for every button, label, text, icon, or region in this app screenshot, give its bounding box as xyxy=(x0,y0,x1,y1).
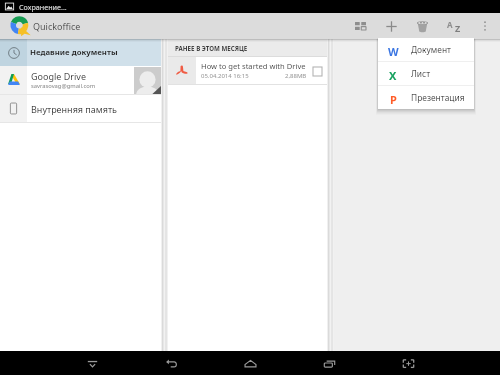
button[interactable]: W xyxy=(378,38,474,61)
staticText: 2,88MB xyxy=(285,72,307,80)
staticText: Quickoffice xyxy=(33,20,81,32)
button[interactable]: Sort xyxy=(438,13,469,39)
staticText: P xyxy=(390,92,397,104)
staticText: Лист xyxy=(411,68,431,79)
button[interactable]: P xyxy=(378,86,474,109)
button[interactable]: Hide keyboard xyxy=(53,351,132,375)
button[interactable]: More options xyxy=(469,13,500,39)
staticText: X xyxy=(389,68,397,80)
staticText: A xyxy=(447,19,453,30)
staticText: РАНЕЕ В ЭТОМ МЕСЯЦЕ xyxy=(175,44,248,52)
button[interactable]: Home xyxy=(211,351,290,375)
staticText: How to get started with Drive xyxy=(201,61,306,71)
button[interactable]: Select file xyxy=(309,63,325,79)
staticText: Недавние документы xyxy=(30,47,118,58)
staticText: Сохранение... xyxy=(19,2,67,12)
button[interactable]: Recent apps xyxy=(290,351,369,375)
staticText: savrasovag@gmail.com xyxy=(31,82,96,90)
button[interactable]: Add xyxy=(376,13,407,39)
button[interactable]: Grid view xyxy=(345,13,376,39)
staticText: Google Drive xyxy=(31,70,86,82)
button[interactable]: Недавние документы xyxy=(0,39,161,66)
button[interactable]: X xyxy=(378,62,474,85)
staticText: 05.04.2014 16:15 xyxy=(201,72,249,80)
staticText: Документ xyxy=(411,44,451,55)
staticText: W xyxy=(388,44,399,56)
staticText: Презентация xyxy=(411,92,465,103)
staticText: Внутренняя память xyxy=(31,103,118,115)
button[interactable]: Back xyxy=(132,351,211,375)
button[interactable]: Внутренняя память xyxy=(0,95,161,122)
button[interactable]: Delete xyxy=(407,13,438,39)
button[interactable]: Screenshot xyxy=(369,351,448,375)
staticText: Z xyxy=(455,22,461,34)
button[interactable]: Google Drive xyxy=(0,66,161,94)
button[interactable]: How to get started with Drive xyxy=(168,57,327,84)
